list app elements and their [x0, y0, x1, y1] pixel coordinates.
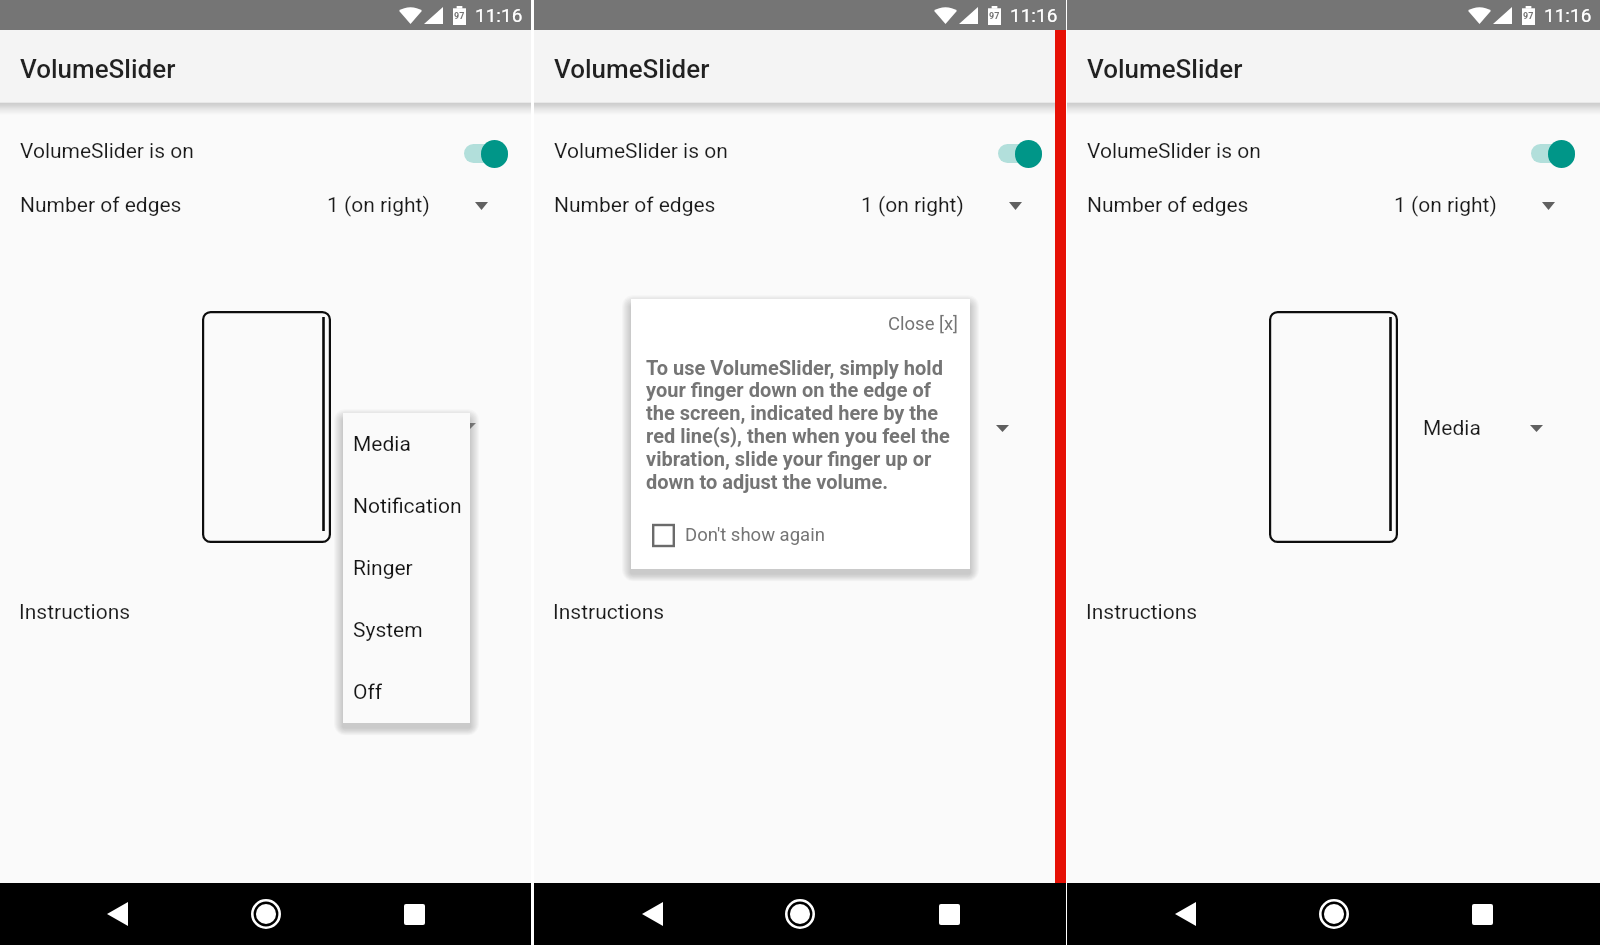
- button[interactable]: Back: [86, 883, 148, 945]
- button[interactable]: VolumeSlider is on: [534, 127, 1066, 175]
- button[interactable]: Back: [621, 883, 683, 945]
- button[interactable]: Recents: [1451, 883, 1513, 945]
- button[interactable]: Instructions: [1086, 600, 1198, 625]
- button[interactable]: 1 (on right): [1367, 184, 1577, 228]
- button[interactable]: Open stream selector: [996, 425, 1009, 432]
- staticText: Notification: [353, 494, 462, 519]
- button[interactable]: Ringer: [343, 537, 470, 599]
- staticText: 1 (on right): [327, 193, 430, 218]
- staticText: Ringer: [353, 556, 413, 581]
- button[interactable]: Recents: [383, 883, 445, 945]
- staticText: Number of edges: [554, 193, 716, 218]
- staticText: VolumeSlider: [554, 54, 710, 84]
- staticText: VolumeSlider: [20, 54, 176, 84]
- button[interactable]: Home: [1303, 883, 1365, 945]
- staticText: 97: [454, 11, 465, 22]
- staticText: VolumeSlider: [1087, 54, 1243, 84]
- button[interactable]: Media: [1407, 405, 1567, 451]
- staticText: Media: [1423, 416, 1481, 441]
- button[interactable]: Toggle VolumeSlider on: [991, 133, 1051, 173]
- button[interactable]: Recents: [918, 883, 980, 945]
- button[interactable]: Back: [1154, 883, 1216, 945]
- button[interactable]: Home: [769, 883, 831, 945]
- button[interactable]: Toggle VolumeSlider on: [457, 133, 517, 173]
- staticText: VolumeSlider is on: [554, 139, 728, 164]
- button[interactable]: Don't show again: [652, 518, 825, 552]
- button[interactable]: VolumeSlider is on: [0, 127, 531, 175]
- staticText: VolumeSlider is on: [1087, 139, 1261, 164]
- button[interactable]: VolumeSlider is on: [1067, 127, 1600, 175]
- staticText: 97: [1523, 11, 1534, 22]
- button[interactable]: Instructions: [553, 600, 665, 625]
- button[interactable]: System: [343, 599, 470, 661]
- staticText: VolumeSlider is on: [20, 139, 194, 164]
- staticText: 11:16: [1544, 4, 1592, 26]
- staticText: 1 (on right): [1394, 193, 1497, 218]
- staticText: Off: [353, 680, 383, 705]
- button[interactable]: Close [x]: [888, 313, 959, 335]
- button[interactable]: Media: [343, 413, 470, 475]
- staticText: 11:16: [1010, 4, 1058, 26]
- staticText: Number of edges: [1087, 193, 1249, 218]
- staticText: 1 (on right): [861, 193, 964, 218]
- button[interactable]: Notification: [343, 475, 470, 537]
- button[interactable]: Off: [343, 661, 470, 723]
- button[interactable]: 1 (on right): [834, 184, 1044, 228]
- staticText: System: [353, 618, 423, 643]
- button[interactable]: 1 (on right): [300, 184, 510, 228]
- staticText: To use VolumeSlider, simply hold your fi…: [646, 356, 951, 494]
- staticText: Media: [353, 432, 411, 457]
- staticText: Number of edges: [20, 193, 182, 218]
- button[interactable]: Toggle VolumeSlider on: [1524, 133, 1584, 173]
- staticText: Don't show again: [685, 524, 825, 546]
- staticText: 11:16: [475, 4, 523, 26]
- staticText: 97: [989, 11, 1000, 22]
- button[interactable]: Home: [235, 883, 297, 945]
- button[interactable]: Instructions: [19, 600, 131, 625]
